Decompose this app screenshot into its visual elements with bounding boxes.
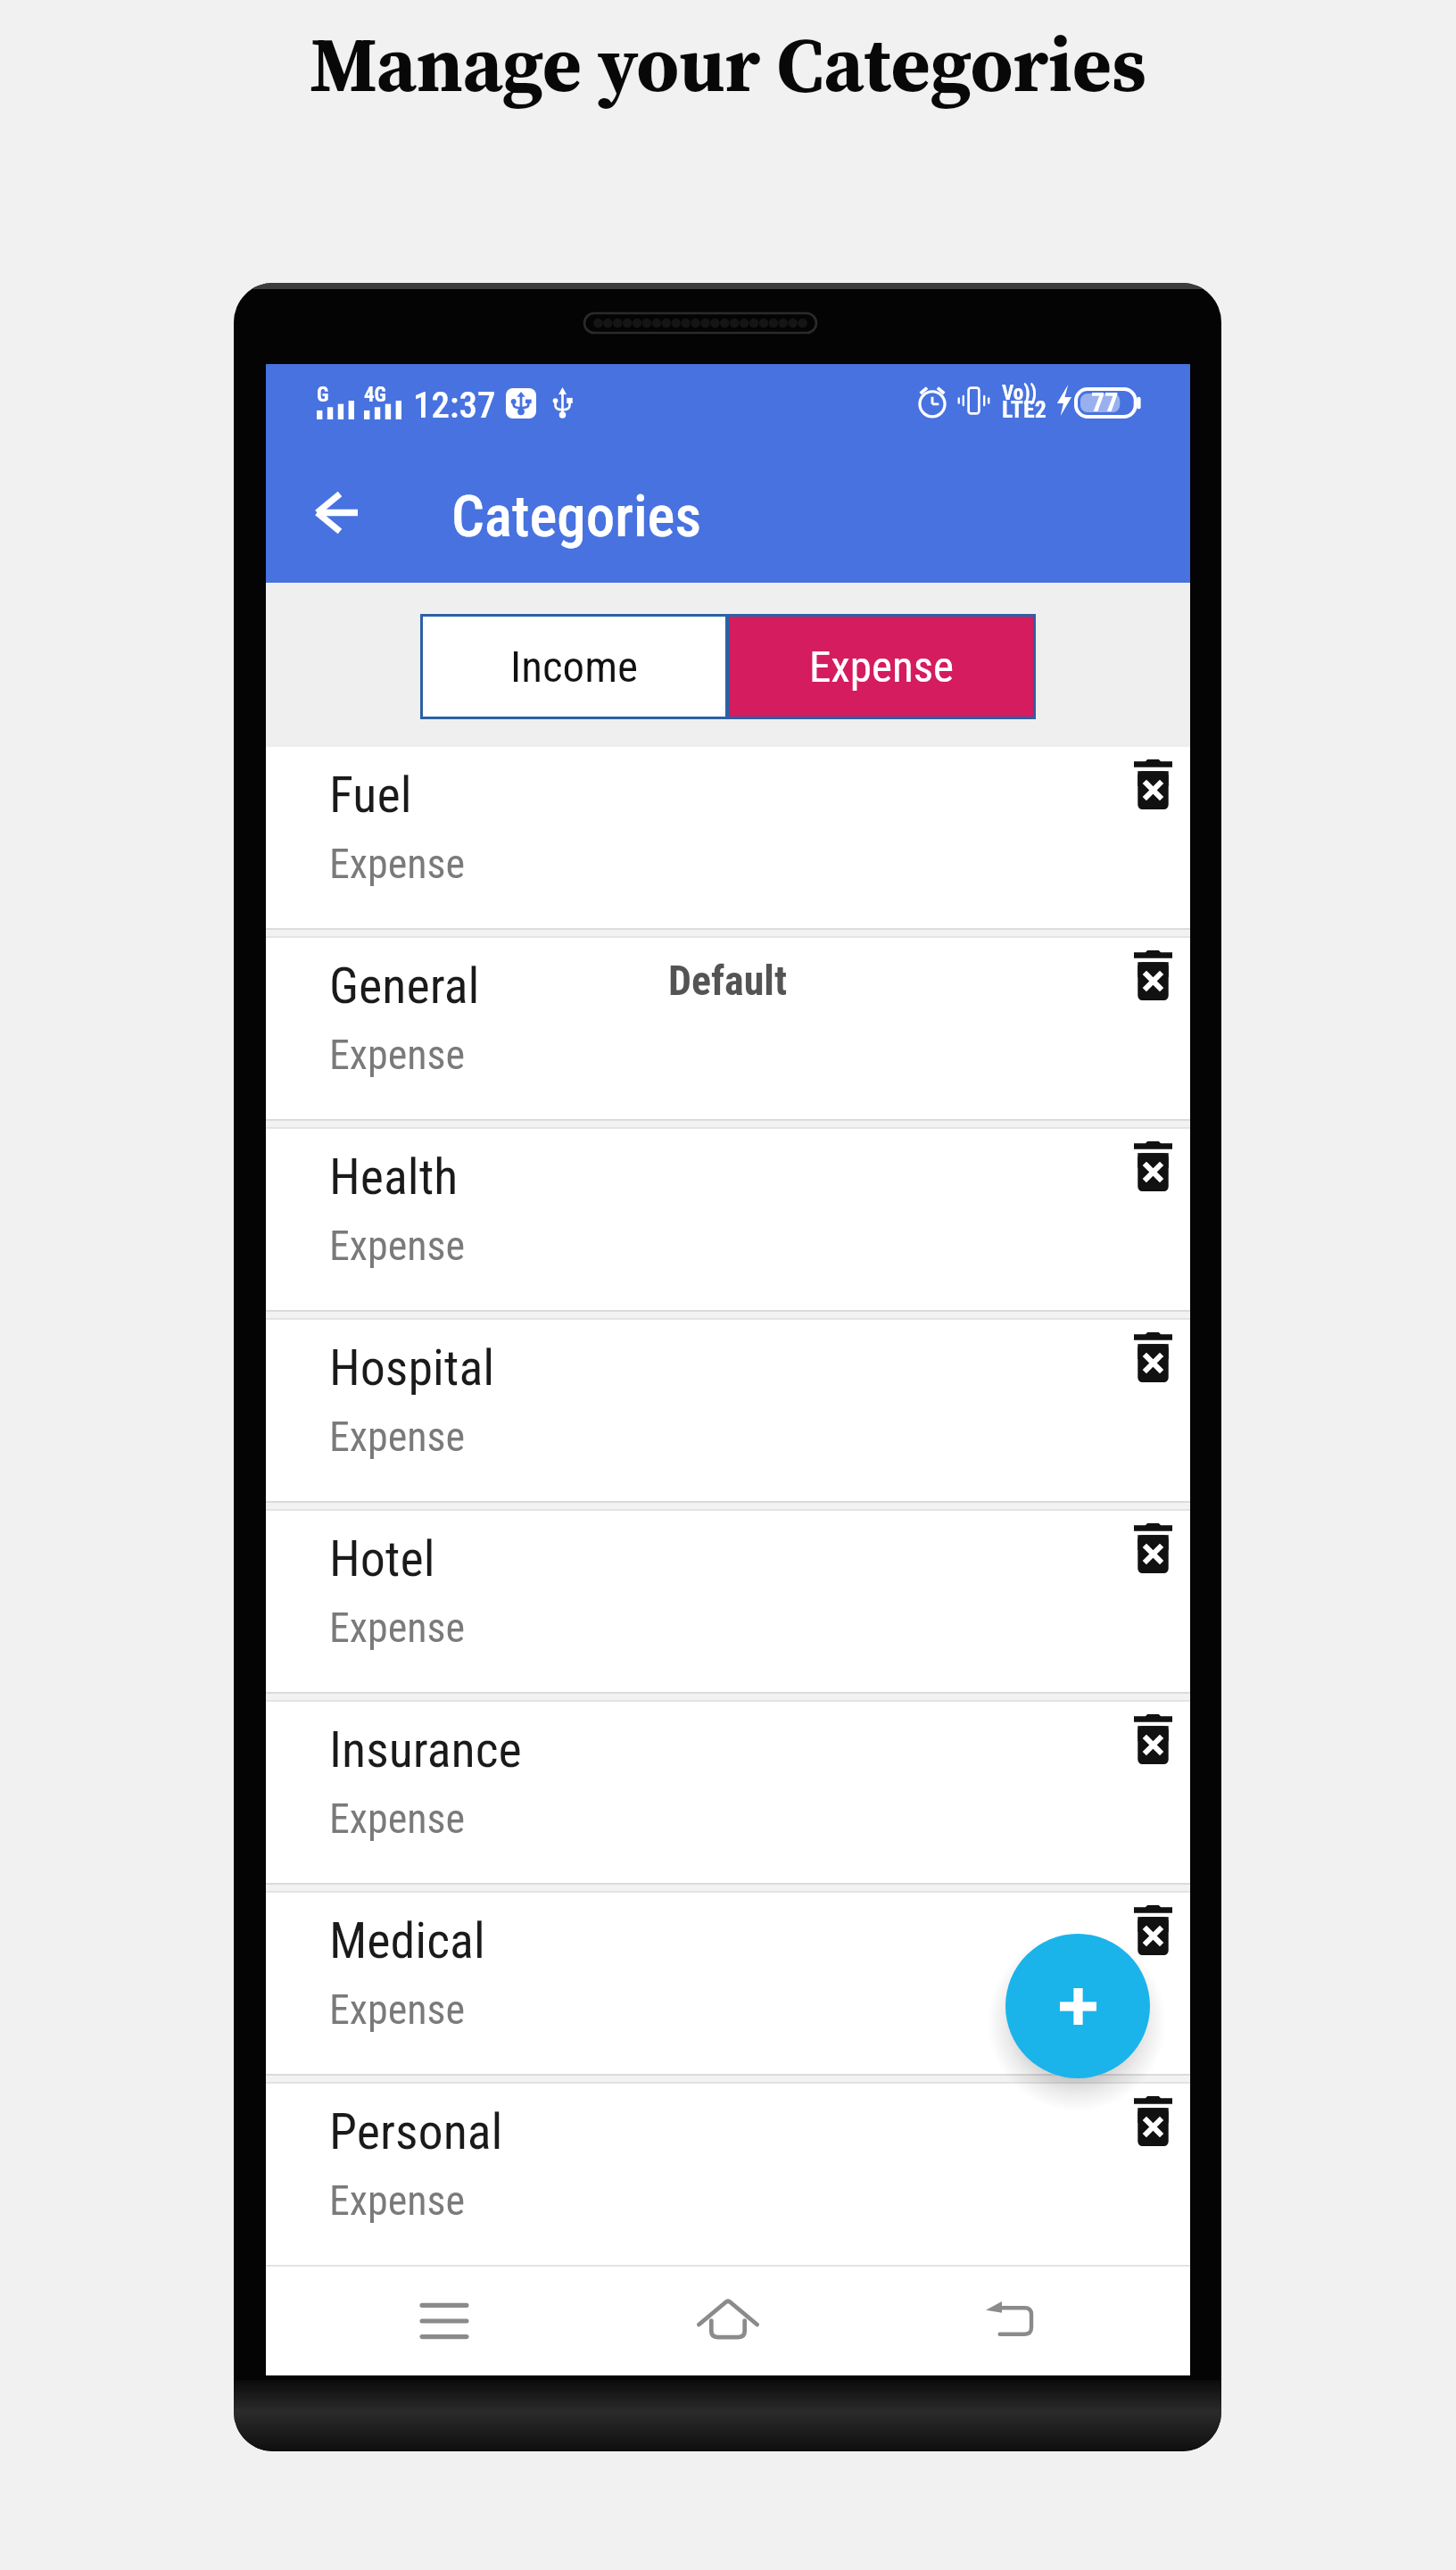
staticText: Expense [329, 2176, 466, 2225]
button[interactable]: Fuel [266, 747, 1190, 928]
button[interactable]: Medical [266, 1893, 1190, 2074]
staticText: Expense [329, 1795, 466, 1843]
staticText: Vo)) [1002, 381, 1038, 405]
staticText: Fuel [329, 766, 412, 825]
staticText: Hotel [329, 1530, 435, 1588]
staticText: Personal [329, 2102, 503, 2161]
button[interactable]: Delete Hotel [1111, 1506, 1195, 1590]
staticText: Medical [329, 1911, 485, 1970]
button[interactable]: Delete General [1111, 933, 1195, 1017]
staticText: 77 [1091, 386, 1119, 418]
staticText: Expense [329, 1413, 466, 1461]
button[interactable]: Expense [728, 614, 1036, 719]
staticText: General [329, 957, 480, 1016]
staticText: Default [668, 957, 788, 1005]
staticText: LTE2 [1002, 396, 1046, 423]
button[interactable]: Insurance [266, 1702, 1190, 1883]
button[interactable]: Home [586, 2267, 870, 2375]
button[interactable]: Health [266, 1129, 1190, 1310]
button[interactable]: Hospital [266, 1320, 1190, 1501]
staticText: Expense [329, 1222, 466, 1270]
button[interactable]: Hotel [266, 1511, 1190, 1692]
staticText: Income [510, 642, 639, 692]
staticText: Hospital [329, 1339, 495, 1397]
staticText: Expense [329, 1986, 466, 2034]
staticText: Health [329, 1148, 459, 1206]
button[interactable]: Delete Hospital [1111, 1315, 1195, 1399]
button[interactable]: Personal [266, 2084, 1190, 2265]
button[interactable]: Delete Personal [1111, 2079, 1195, 2163]
staticText: Categories [451, 483, 701, 551]
button[interactable]: Recent apps [302, 2267, 586, 2375]
button[interactable]: Back [870, 2267, 1154, 2375]
button[interactable]: Income [420, 614, 728, 719]
staticText: Expense [329, 1031, 466, 1079]
button[interactable]: Delete Health [1111, 1124, 1195, 1208]
staticText: Insurance [329, 1720, 522, 1779]
staticText: Expense [809, 642, 955, 692]
staticText: Manage your Categories [310, 12, 1146, 117]
button[interactable]: Back [291, 467, 382, 558]
staticText: G [317, 383, 329, 407]
button[interactable]: Add category [1005, 1934, 1150, 2078]
staticText: Expense [329, 1604, 466, 1652]
staticText: 12:37 [413, 384, 496, 427]
button[interactable]: General [266, 938, 1190, 1119]
staticText: 4G [364, 383, 387, 407]
button[interactable]: Delete Medical [1111, 1888, 1195, 1972]
staticText: Expense [329, 840, 466, 888]
button[interactable]: Delete Fuel [1111, 742, 1195, 826]
button[interactable]: Delete Insurance [1111, 1697, 1195, 1781]
